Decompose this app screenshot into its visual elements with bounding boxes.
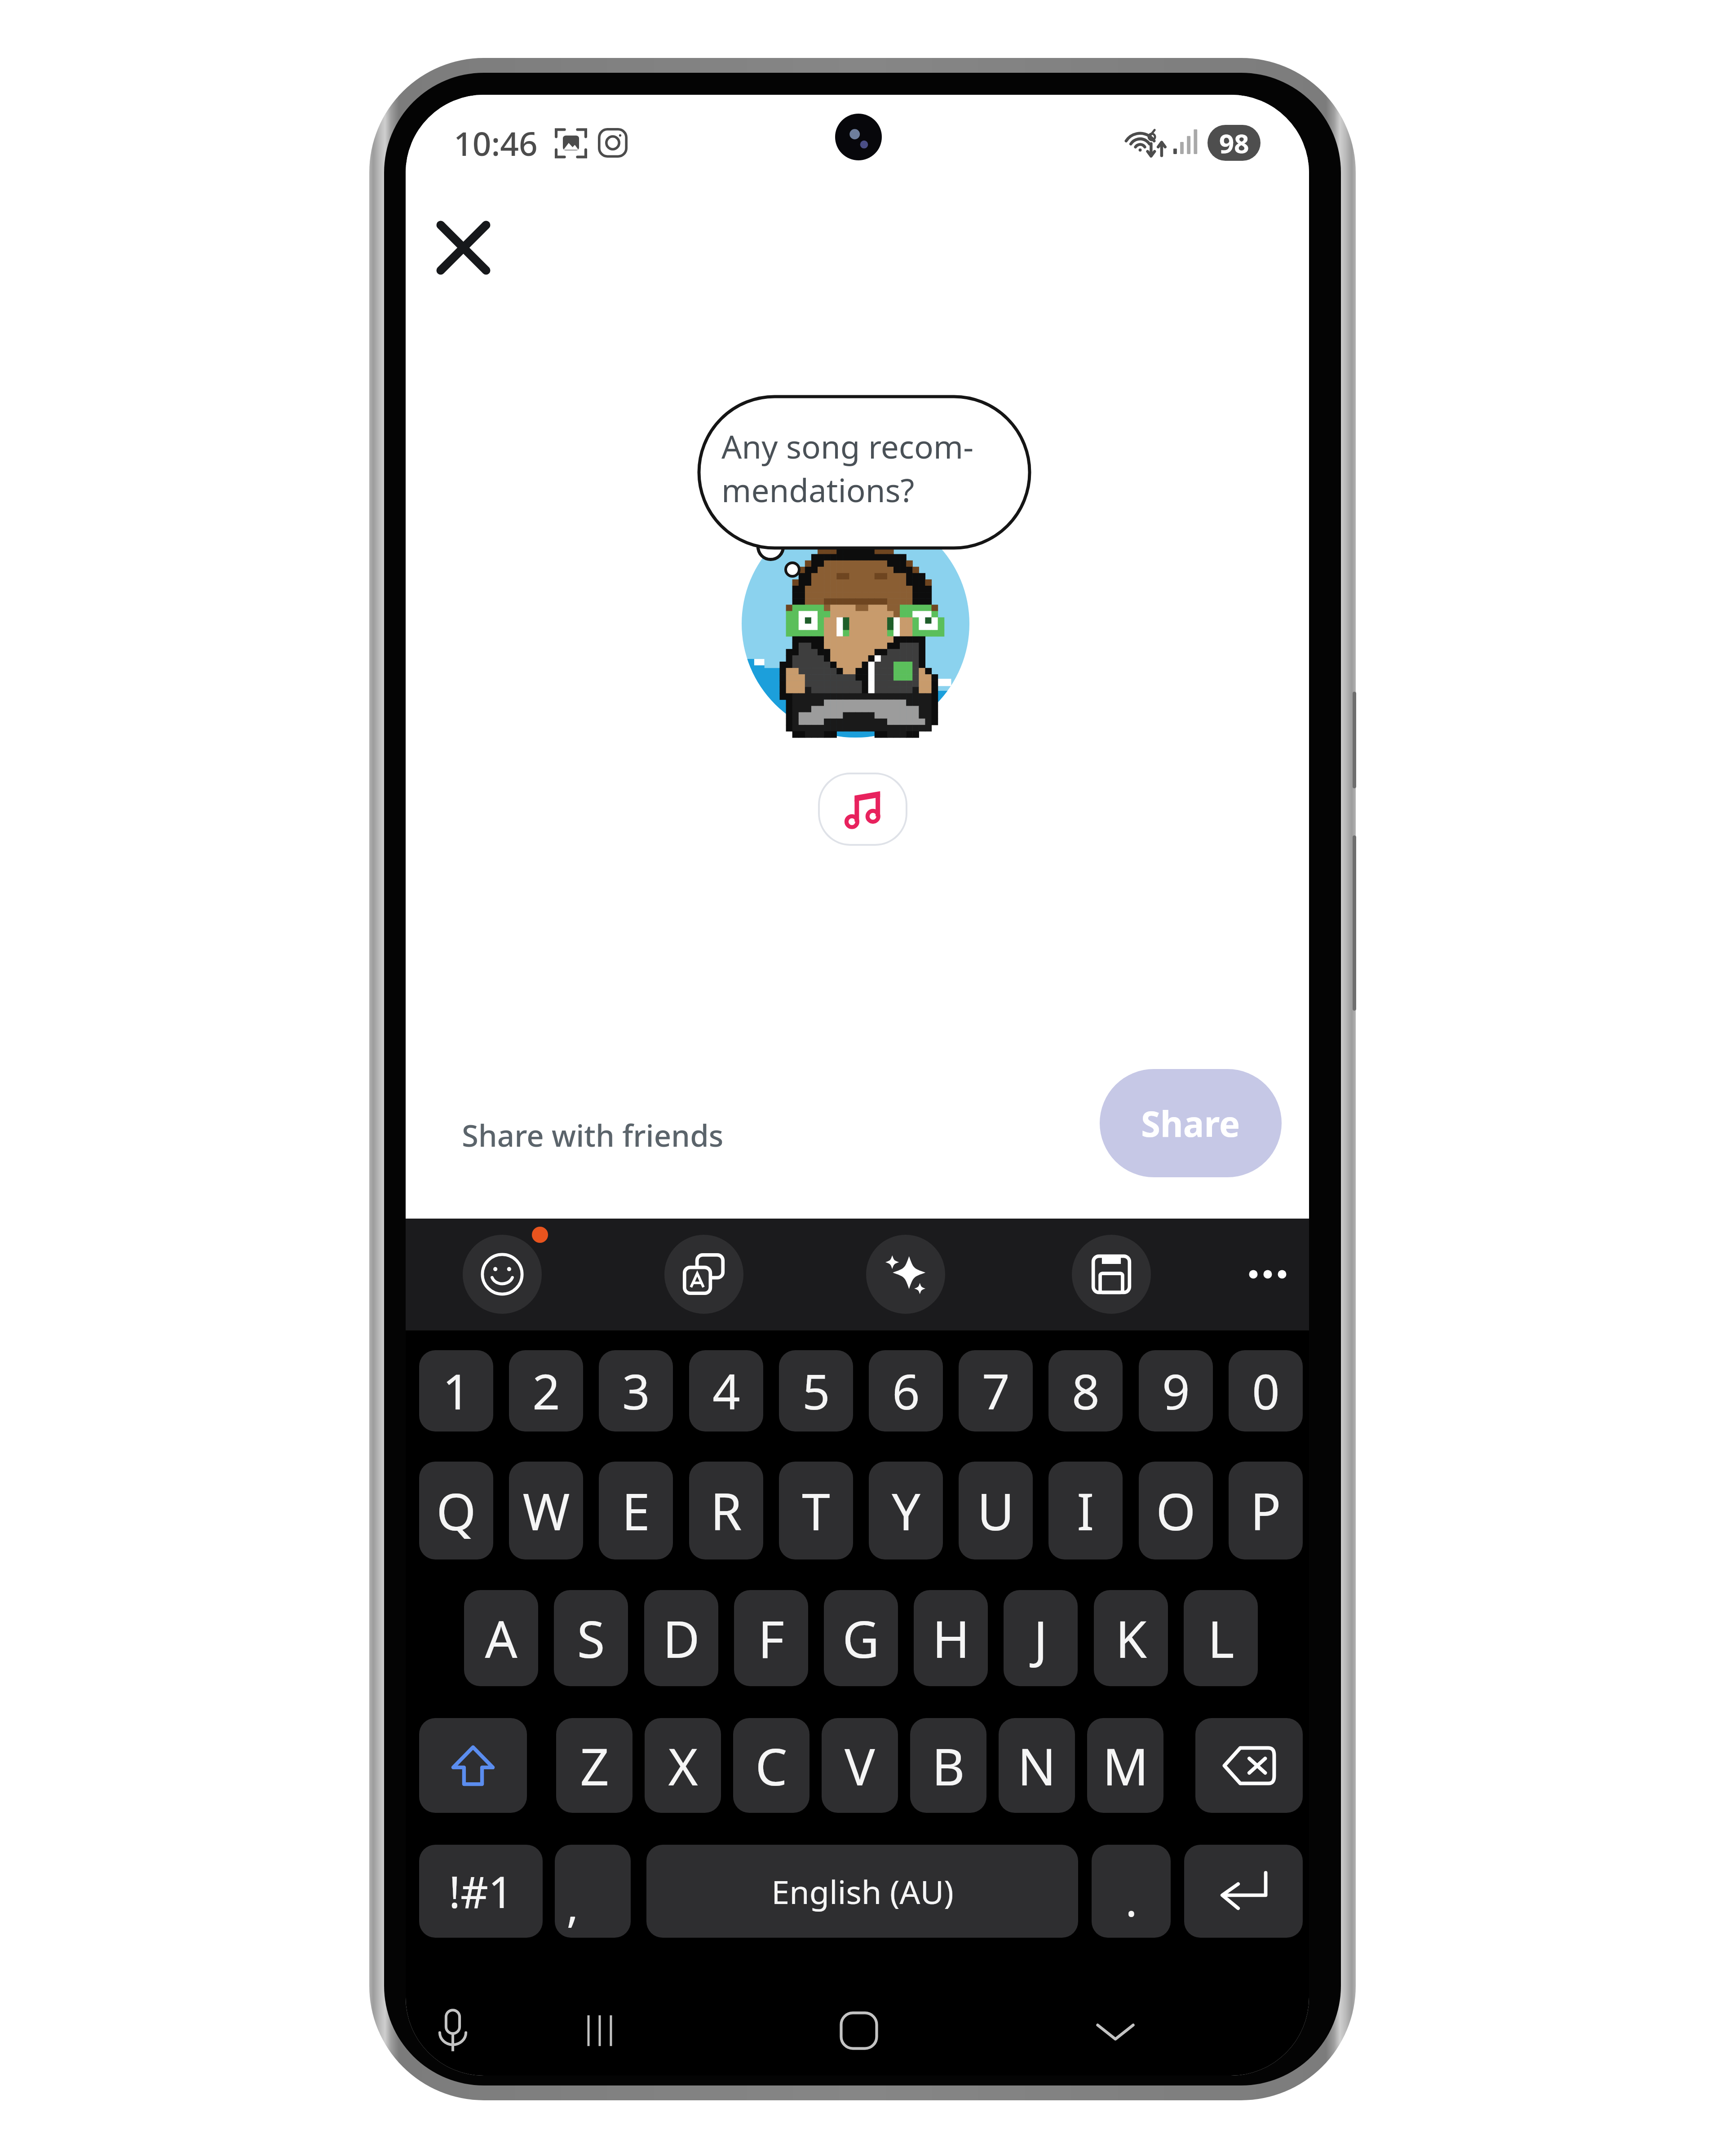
staticText: X (668, 1731, 698, 1800)
staticText: P (1250, 1476, 1281, 1545)
button[interactable]: Backspace (1195, 1718, 1303, 1813)
staticText: R (710, 1476, 742, 1545)
staticText: Q (436, 1476, 476, 1545)
staticText: T (802, 1476, 830, 1545)
staticText: K (1115, 1604, 1147, 1673)
button[interactable]: Period (1092, 1845, 1171, 1938)
staticText: J (1034, 1604, 1048, 1673)
button[interactable]: L (1184, 1590, 1258, 1686)
button[interactable]: J (1004, 1590, 1078, 1686)
button[interactable]: 1 (419, 1350, 493, 1431)
staticText: 2 (532, 1358, 560, 1424)
button[interactable]: 7 (959, 1350, 1033, 1431)
button[interactable]: 2 (509, 1350, 583, 1431)
button[interactable]: Y (869, 1462, 943, 1560)
staticText: . (1125, 1869, 1137, 1930)
staticText: F (758, 1604, 784, 1673)
staticText: A (485, 1604, 517, 1673)
staticText: 1 (442, 1358, 470, 1424)
staticText: I (1077, 1476, 1094, 1545)
staticText: Share (1141, 1100, 1240, 1147)
button[interactable]: M (1087, 1718, 1163, 1813)
staticText: C (755, 1731, 787, 1800)
button[interactable]: Voice input (417, 1995, 489, 2067)
staticText: , (566, 1874, 579, 1935)
button[interactable]: A (464, 1590, 538, 1686)
button[interactable]: Comma (555, 1845, 631, 1938)
button[interactable]: Add music (818, 773, 907, 846)
button[interactable]: V (822, 1718, 898, 1813)
button[interactable]: E (599, 1462, 673, 1560)
button[interactable]: Writing assist (866, 1235, 945, 1314)
staticText: English (AU) (771, 1869, 954, 1913)
button[interactable]: B (910, 1718, 986, 1813)
button[interactable]: 3 (599, 1350, 673, 1431)
button[interactable]: Close (423, 207, 504, 288)
staticText: 4 (712, 1358, 740, 1424)
button[interactable]: U (959, 1462, 1033, 1560)
button[interactable]: T (779, 1462, 853, 1560)
button[interactable]: Home (823, 1995, 895, 2067)
staticText: D (663, 1604, 700, 1673)
staticText: 7 (982, 1358, 1010, 1424)
staticText: V (845, 1731, 875, 1800)
staticText: Any song recom- (721, 424, 974, 468)
staticText: L (1207, 1604, 1234, 1673)
button[interactable]: Clipboard (1072, 1235, 1151, 1314)
button[interactable]: Translate (664, 1235, 743, 1314)
button[interactable]: N (999, 1718, 1075, 1813)
staticText: Z (580, 1731, 609, 1800)
button[interactable]: Enter (1184, 1845, 1303, 1938)
staticText: 0 (1252, 1358, 1280, 1424)
staticText: Share with friends (462, 1114, 724, 1155)
staticText: 9 (1162, 1358, 1190, 1424)
staticText: W (522, 1476, 570, 1545)
staticText: !#1 (449, 1862, 513, 1921)
button[interactable]: S (554, 1590, 628, 1686)
button[interactable]: More options (1228, 1235, 1307, 1314)
button[interactable]: Emoji (463, 1235, 542, 1314)
button[interactable]: 6 (869, 1350, 943, 1431)
button[interactable]: R (689, 1462, 763, 1560)
staticText: 3 (622, 1358, 650, 1424)
button[interactable]: H (914, 1590, 988, 1686)
staticText: M (1102, 1731, 1149, 1800)
button[interactable]: O (1139, 1462, 1213, 1560)
button[interactable]: Z (556, 1718, 632, 1813)
button[interactable]: !#1 (419, 1845, 543, 1938)
button[interactable]: G (824, 1590, 898, 1686)
button[interactable]: I (1048, 1462, 1123, 1560)
button[interactable]: W (509, 1462, 583, 1560)
staticText: 10:46 (454, 121, 538, 165)
button[interactable]: C (733, 1718, 809, 1813)
button[interactable]: 0 (1229, 1350, 1303, 1431)
button[interactable]: 8 (1048, 1350, 1123, 1431)
button[interactable]: Hide keyboard (1079, 1995, 1151, 2067)
staticText: U (977, 1476, 1014, 1545)
button[interactable]: F (734, 1590, 808, 1686)
staticText: N (1017, 1731, 1056, 1800)
staticText: Y (892, 1476, 920, 1545)
staticText: E (622, 1476, 650, 1545)
button[interactable]: Shift (419, 1718, 527, 1813)
staticText: G (842, 1604, 880, 1673)
button[interactable]: 5 (779, 1350, 853, 1431)
staticText: mendations? (721, 468, 915, 512)
staticText: H (932, 1604, 970, 1673)
button[interactable]: X (645, 1718, 721, 1813)
button[interactable]: K (1094, 1590, 1168, 1686)
staticText: B (932, 1731, 965, 1800)
button[interactable]: English (AU) (646, 1845, 1078, 1938)
button[interactable]: Share (1100, 1069, 1282, 1177)
staticText: 8 (1072, 1358, 1100, 1424)
button[interactable]: 9 (1139, 1350, 1213, 1431)
button[interactable]: D (644, 1590, 718, 1686)
staticText: O (1156, 1476, 1196, 1545)
staticText: 98 (1219, 125, 1249, 161)
staticText: 5 (802, 1358, 830, 1424)
button[interactable]: Q (419, 1462, 493, 1560)
staticText: 6 (892, 1358, 920, 1424)
button[interactable]: Recent apps (564, 1995, 636, 2067)
button[interactable]: 4 (689, 1350, 763, 1431)
button[interactable]: P (1229, 1462, 1303, 1560)
